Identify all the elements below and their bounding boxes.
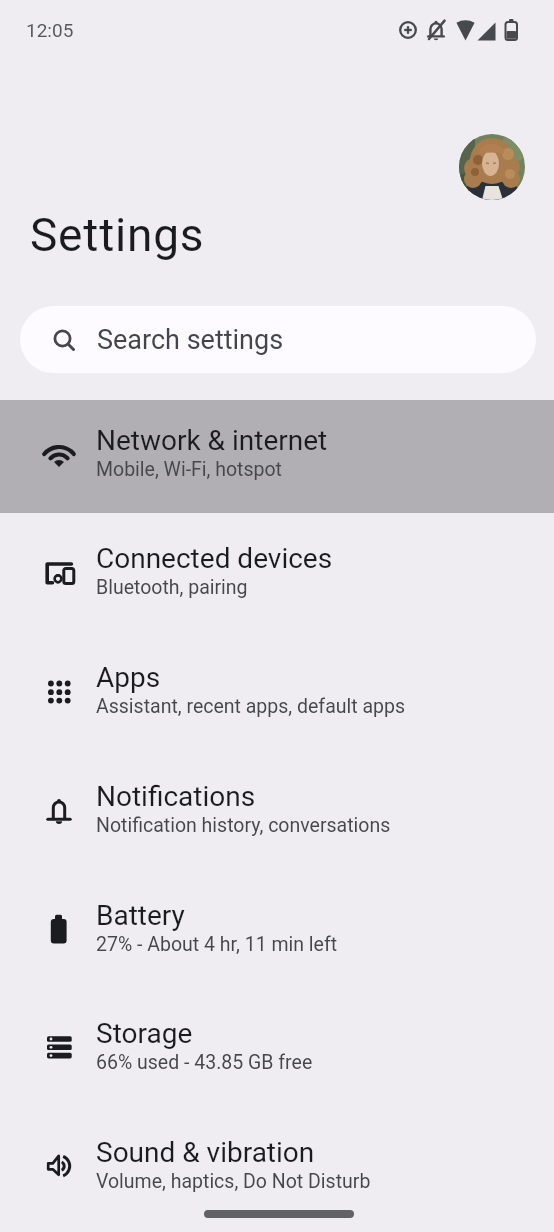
staticText: Settings: [30, 208, 205, 262]
button[interactable]: Apps: [0, 637, 554, 756]
button[interactable]: [459, 134, 525, 200]
staticText: 66% used - 43.85 GB free: [96, 1051, 313, 1074]
staticText: Battery: [96, 899, 185, 932]
staticText: Network & internet: [96, 424, 328, 457]
button[interactable]: Battery: [0, 875, 554, 994]
button[interactable]: Search settings: [20, 306, 536, 373]
staticText: Sound & vibration: [96, 1136, 315, 1169]
staticText: Apps: [96, 661, 161, 694]
button[interactable]: Storage: [0, 993, 554, 1112]
staticText: Mobile, Wi-Fi, hotspot: [96, 458, 282, 481]
staticText: Notifications: [96, 780, 256, 813]
button[interactable]: Network & internet: [0, 400, 554, 519]
staticText: 12:05: [26, 19, 74, 41]
button[interactable]: Notifications: [0, 756, 554, 875]
staticText: 27% - About 4 hr, 11 min left: [96, 933, 338, 956]
staticText: Connected devices: [96, 542, 333, 575]
button[interactable]: Sound & vibration: [0, 1112, 554, 1231]
button[interactable]: Connected devices: [0, 518, 554, 637]
staticText: Bluetooth, pairing: [96, 576, 248, 599]
staticText: Volume, haptics, Do Not Disturb: [96, 1170, 371, 1193]
staticText: Assistant, recent apps, default apps: [96, 695, 406, 718]
staticText: Search settings: [97, 324, 284, 356]
staticText: Storage: [96, 1017, 193, 1050]
staticText: Notification history, conversations: [96, 814, 391, 837]
